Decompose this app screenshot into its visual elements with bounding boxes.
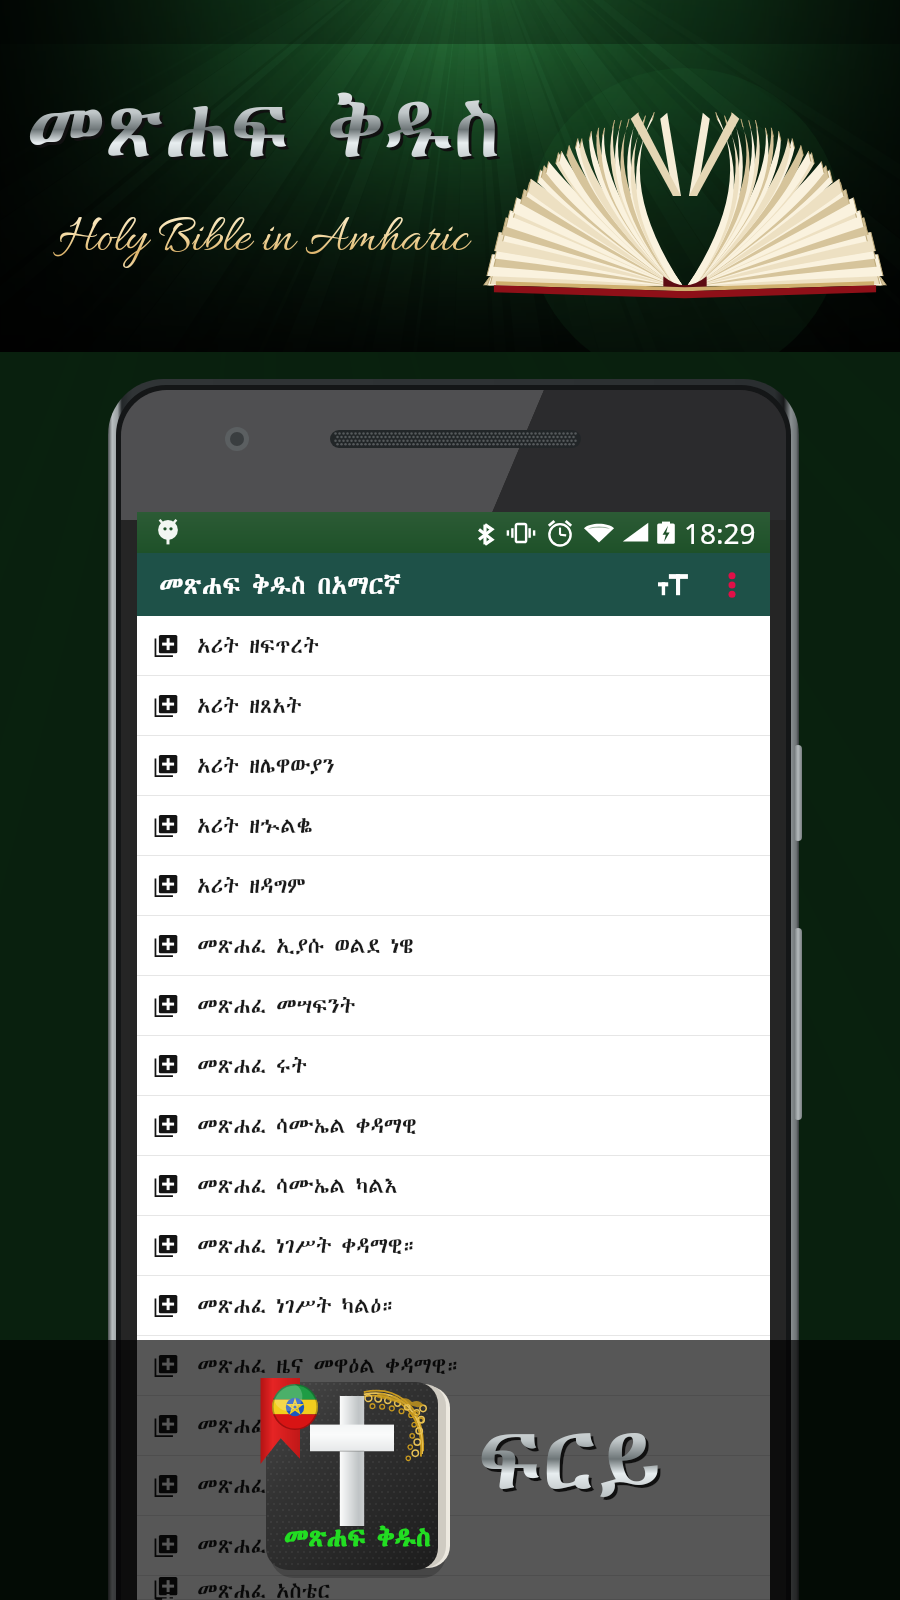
button[interactable]: መጽሐፈ ነህምያ bbox=[137, 1516, 770, 1576]
staticText: አሪት ዘጸአት bbox=[197, 691, 302, 720]
button[interactable]: መጽሐፈ ሳሙኤል ቀዳማዊ bbox=[137, 1096, 770, 1156]
staticText: ፍርይ bbox=[481, 1401, 664, 1523]
button[interactable]: አሪት ዘዳግም bbox=[137, 856, 770, 916]
button[interactable]: አሪት ዘፍጥረት bbox=[137, 616, 770, 676]
staticText: Holy Bible in Amharic bbox=[58, 208, 468, 272]
button[interactable]: መጽሐፈ ዜና መዋዕል ካልዕ። bbox=[137, 1396, 770, 1456]
button[interactable]: መጽሐፈ ሳሙኤል ካልእ bbox=[137, 1156, 770, 1216]
staticText: አሪት ዘኍልቈ bbox=[197, 811, 313, 840]
staticText: መጽሐፈ ኢያሱ ወልደ ነዌ bbox=[197, 931, 414, 960]
button[interactable]: መጽሐፈ አስቴር bbox=[137, 1576, 770, 1600]
button[interactable]: አሪት ዘኍልቈ bbox=[137, 796, 770, 856]
staticText: መጽሐፈ ዕዝራ bbox=[197, 1471, 318, 1500]
staticText: መጽሐፈ ነገሥት ቀዳማዊ። bbox=[197, 1231, 419, 1260]
staticText: መጽሐፍ ቅዱስ bbox=[29, 77, 503, 188]
staticText: መጽሐፈ ነገሥት ካልዕ። bbox=[197, 1291, 398, 1320]
staticText: መጽሐፈ አስቴር bbox=[197, 1576, 331, 1599]
staticText: መጽሐፍ ቅዱስ bbox=[26, 74, 500, 185]
staticText: ፍርይ bbox=[478, 1398, 661, 1520]
staticText: አሪት ዘዳግም bbox=[197, 871, 306, 900]
staticText: መጽሐፍ ቅዱስ በአማርኛ bbox=[159, 568, 401, 602]
staticText: መጽሐፈ ነህምያ bbox=[197, 1531, 327, 1560]
staticText: መጽሐፈ ዜና መዋዕል ካልዕ። bbox=[197, 1411, 441, 1440]
button[interactable]: መጽሐፈ መሣፍንት bbox=[137, 976, 770, 1036]
staticText: አሪት ዘሌዋውያን bbox=[197, 751, 335, 780]
button[interactable]: መጽሐፈ ሩት bbox=[137, 1036, 770, 1096]
staticText: መጽሐፈ መሣፍንት bbox=[197, 991, 356, 1020]
staticText: አሪት ዘፍጥረት bbox=[197, 631, 320, 660]
button[interactable]: መጽሐፈ ዕዝራ bbox=[137, 1456, 770, 1516]
button[interactable]: አሪት ዘሌዋውያን bbox=[137, 736, 770, 796]
staticText: መጽሐፈ ሩት bbox=[197, 1051, 308, 1080]
staticText: መጽሐፈ ሳሙኤል ካልእ bbox=[197, 1171, 398, 1200]
button[interactable]: Text size bbox=[646, 556, 704, 614]
button[interactable]: More options bbox=[704, 557, 760, 613]
staticText: መጽሐፍ ቅዱስ bbox=[284, 1520, 431, 1554]
staticText: 18:29 bbox=[684, 514, 756, 552]
button[interactable]: መጽሐፈ ዜና መዋዕል ቀዳማዊ። bbox=[137, 1336, 770, 1396]
staticText: መጽሐፈ ሳሙኤል ቀዳማዊ bbox=[197, 1111, 417, 1140]
button[interactable]: አሪት ዘጸአት bbox=[137, 676, 770, 736]
button[interactable]: መጽሐፈ ኢያሱ ወልደ ነዌ bbox=[137, 916, 770, 976]
button[interactable]: መጽሐፈ ነገሥት ቀዳማዊ። bbox=[137, 1216, 770, 1276]
button[interactable]: መጽሐፈ ነገሥት ካልዕ። bbox=[137, 1276, 770, 1336]
staticText: መጽሐፈ ዜና መዋዕል ቀዳማዊ። bbox=[197, 1351, 463, 1380]
